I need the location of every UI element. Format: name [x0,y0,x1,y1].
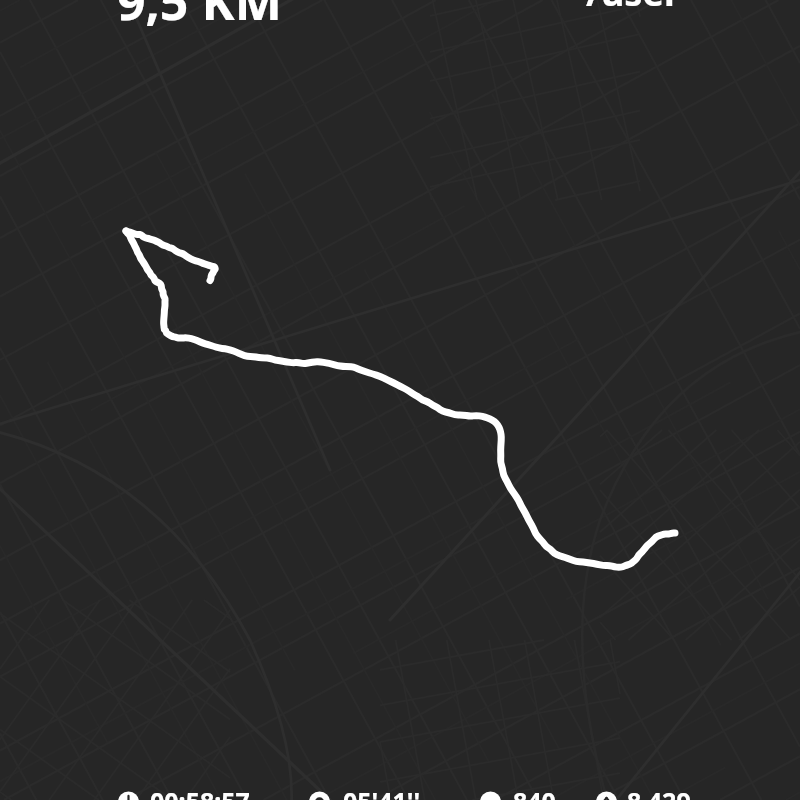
button[interactable]: 8429 steps [590,782,703,800]
button[interactable]: 840 calories [474,782,561,800]
staticText: 8 429 [627,784,691,800]
staticText: /user [586,0,680,17]
staticText: 840 [513,784,556,800]
button[interactable]: Activity map [0,0,800,800]
staticText: 9,5 KM [117,0,282,29]
button[interactable]: 9,5 KM [112,0,277,22]
staticText: 05'41'' [343,784,421,800]
button[interactable]: /user [580,0,674,18]
button[interactable]: Pace 5 minutes 41 seconds per kilometre [303,782,447,800]
button[interactable]: Duration 00:58:57 [112,782,268,800]
staticText: 00:58:57 [150,784,250,800]
